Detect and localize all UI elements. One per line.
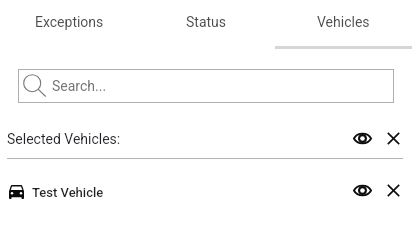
button[interactable]: Show Test Vehicle bbox=[347, 175, 378, 206]
staticText: Exceptions bbox=[35, 14, 104, 30]
button[interactable]: Remove Test Vehicle bbox=[378, 175, 409, 206]
button[interactable]: Test Vehicle bbox=[0, 172, 412, 209]
button[interactable]: Exceptions bbox=[0, 0, 138, 49]
staticText: Search... bbox=[52, 78, 107, 94]
button[interactable]: Search... bbox=[18, 69, 394, 103]
button[interactable]: Status bbox=[138, 0, 275, 49]
staticText: Vehicles bbox=[317, 14, 370, 30]
staticText: Selected Vehicles: bbox=[7, 131, 121, 147]
button[interactable]: Show selected vehicles bbox=[347, 123, 378, 154]
button[interactable]: Vehicles bbox=[275, 0, 412, 49]
button[interactable]: Clear selected vehicles bbox=[378, 123, 409, 154]
staticText: Test Vehicle bbox=[32, 185, 104, 200]
staticText: Status bbox=[186, 14, 227, 30]
